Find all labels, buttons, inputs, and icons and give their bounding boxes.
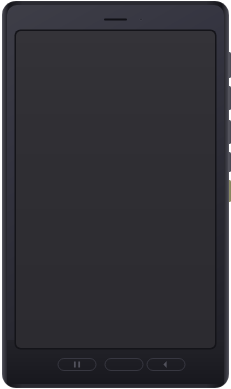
button[interactable]: Tablet device front view xyxy=(0,0,231,389)
